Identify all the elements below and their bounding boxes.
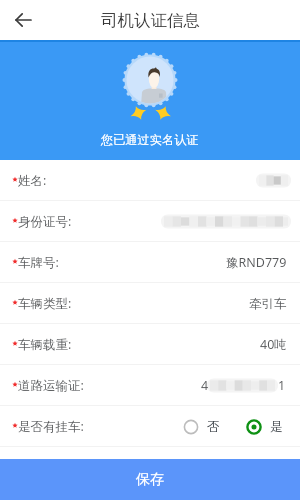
staticText: 车辆载重: (18, 336, 72, 353)
button[interactable]: 是否有挂车: (0, 406, 300, 447)
staticText: 牵引车 (249, 296, 287, 312)
button[interactable]: 车辆类型: (0, 283, 300, 324)
staticText: 道路运输证: (18, 377, 84, 394)
button[interactable]: 车牌号: (0, 242, 300, 283)
button[interactable]: Back (8, 5, 38, 35)
staticText: 是否有挂车: (18, 418, 84, 435)
button[interactable]: 道路运输证: (0, 365, 300, 406)
staticText: 否 (207, 419, 220, 435)
button[interactable]: 是 (246, 419, 283, 435)
staticText: 40吨 (260, 336, 287, 353)
button[interactable]: 车辆载重: (0, 324, 300, 365)
staticText: 姓名: (18, 172, 47, 189)
button[interactable]: 身份证号: (0, 201, 300, 242)
staticText: 您已通过实名认证 (101, 132, 199, 147)
button[interactable]: 否 (183, 419, 220, 435)
staticText: 车辆类型: (18, 295, 72, 312)
staticText: 保存 (136, 471, 164, 489)
staticText: 是 (270, 419, 283, 435)
staticText: 4 (201, 377, 209, 394)
staticText: 车牌号: (18, 254, 59, 271)
staticText: 身份证号: (18, 213, 72, 230)
button[interactable]: 保存 (0, 459, 300, 500)
staticText: 豫RND779 (226, 254, 287, 271)
button[interactable]: 姓名: (0, 160, 300, 201)
staticText: 司机认证信息 (101, 10, 200, 31)
staticText: 1 (278, 377, 286, 394)
